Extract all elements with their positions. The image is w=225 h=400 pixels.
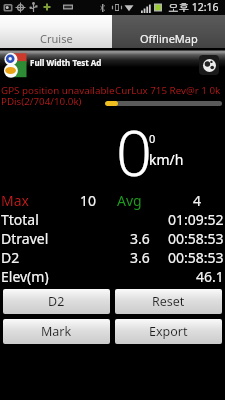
staticText: 3.6 bbox=[130, 229, 150, 248]
staticText: 01:09:52 bbox=[168, 210, 224, 229]
button[interactable]: Export bbox=[115, 319, 222, 344]
staticText: PDis(2/704/10.0k) bbox=[1, 95, 82, 108]
staticText: 00:58:53 bbox=[168, 248, 224, 267]
staticText: Ttotal bbox=[1, 210, 39, 229]
staticText: 00:58:53 bbox=[168, 229, 224, 248]
button[interactable]: OfflineMap bbox=[112, 15, 225, 48]
staticText: 오후 12:16 bbox=[168, 0, 219, 14]
button[interactable]: Full Width Test Ad bbox=[0, 50, 225, 80]
staticText: Mark bbox=[41, 323, 72, 340]
staticText: 3.6 bbox=[130, 248, 150, 267]
staticText: Export bbox=[149, 323, 188, 340]
button[interactable]: Cruise bbox=[0, 15, 112, 48]
staticText: GPS position unavailable bbox=[1, 84, 115, 97]
staticText: Elev(m) bbox=[1, 267, 49, 286]
staticText: Max bbox=[1, 191, 29, 210]
staticText: Dtravel bbox=[1, 229, 49, 248]
staticText: km/h bbox=[149, 150, 184, 169]
button[interactable]: Mark bbox=[3, 319, 110, 344]
button[interactable]: Open advertisement bbox=[199, 55, 219, 75]
staticText: D2 bbox=[48, 293, 65, 310]
staticText: Cruise bbox=[40, 31, 73, 46]
staticText: 4 bbox=[193, 191, 202, 210]
staticText: Reset bbox=[152, 293, 185, 310]
staticText: OfflineMap bbox=[140, 31, 198, 46]
staticText: CurLux 715 Rev@r 1 0k bbox=[115, 84, 221, 97]
staticText: 10 bbox=[80, 191, 97, 210]
staticText: Full Width Test Ad bbox=[30, 57, 102, 68]
staticText: Avg bbox=[117, 191, 142, 210]
staticText: 0 bbox=[149, 131, 156, 146]
button[interactable]: Reset bbox=[115, 289, 222, 314]
staticText: 0 bbox=[116, 109, 152, 195]
staticText: D2 bbox=[1, 248, 20, 267]
button[interactable]: D2 bbox=[3, 289, 110, 314]
staticText: 46.1 bbox=[196, 267, 224, 286]
